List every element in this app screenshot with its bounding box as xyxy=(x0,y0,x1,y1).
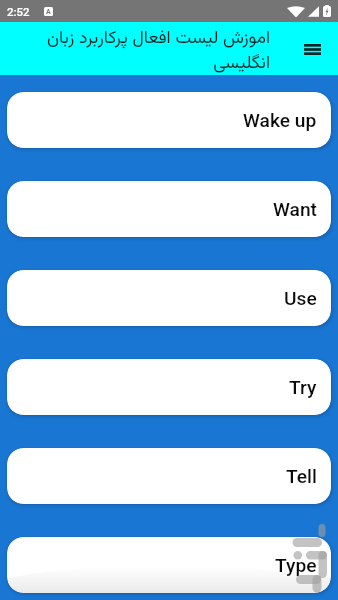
staticText: Want xyxy=(273,198,317,221)
staticText: 2:52 xyxy=(7,5,30,18)
staticText: Wake up xyxy=(243,109,317,132)
button[interactable]: Use xyxy=(7,270,331,326)
staticText: Use xyxy=(284,287,317,310)
button[interactable]: Menu xyxy=(296,33,328,65)
staticText: Try xyxy=(289,376,317,399)
staticText: Type xyxy=(275,554,317,577)
button[interactable]: Wake up xyxy=(7,92,331,148)
staticText: Tell xyxy=(286,465,317,488)
button[interactable]: Want xyxy=(7,181,331,237)
button[interactable]: Try xyxy=(7,359,331,415)
button[interactable]: Tell xyxy=(7,448,331,504)
staticText: A xyxy=(46,8,51,16)
staticText: اموزش لیست افعال پرکاربرد زبان انگلیسی xyxy=(38,25,270,75)
button[interactable]: Type xyxy=(7,537,331,593)
